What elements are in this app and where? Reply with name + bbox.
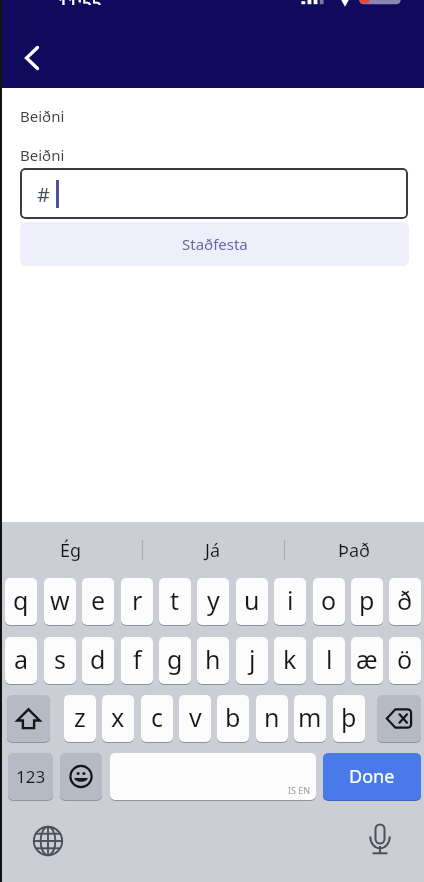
staticText: n	[264, 700, 280, 734]
staticText: f	[133, 642, 142, 676]
staticText: Beiðni	[20, 145, 65, 165]
button[interactable]: v	[179, 695, 211, 742]
staticText: r	[132, 583, 143, 617]
button[interactable]: Backspace	[377, 695, 421, 742]
button[interactable]: h	[197, 637, 229, 684]
staticText: 123	[16, 765, 46, 788]
button[interactable]: k	[274, 637, 306, 684]
button[interactable]: ð	[389, 578, 421, 625]
button[interactable]: q	[5, 578, 37, 625]
button[interactable]: g	[159, 637, 191, 684]
staticText: k	[283, 642, 297, 676]
staticText: Beiðni	[20, 106, 65, 126]
button[interactable]: s	[44, 637, 76, 684]
button[interactable]: t	[159, 578, 191, 625]
button[interactable]: Já	[142, 522, 283, 578]
button[interactable]: j	[236, 637, 268, 684]
button[interactable]: i	[274, 578, 306, 625]
button[interactable]: d	[82, 637, 114, 684]
staticText: x	[111, 700, 125, 734]
staticText: þ	[341, 700, 357, 734]
staticText: c	[151, 700, 164, 734]
button[interactable]: Done	[323, 753, 421, 800]
staticText: #	[37, 181, 50, 208]
staticText: l	[326, 642, 333, 676]
button[interactable]: 123	[8, 753, 53, 800]
button[interactable]: #	[20, 168, 408, 219]
button[interactable]: u	[236, 578, 268, 625]
staticText: w	[50, 583, 70, 617]
staticText: y	[207, 583, 220, 617]
staticText: u	[244, 583, 260, 617]
button[interactable]: e	[82, 578, 114, 625]
button[interactable]: Voice input	[360, 820, 400, 860]
staticText: t	[170, 583, 180, 617]
staticText: æ	[356, 642, 378, 676]
staticText: d	[90, 642, 106, 676]
staticText: s	[54, 642, 66, 676]
button[interactable]: Það	[283, 522, 424, 578]
button[interactable]: z	[64, 695, 96, 742]
button[interactable]: Ég	[0, 522, 142, 578]
button[interactable]: m	[294, 695, 326, 742]
staticText: v	[189, 700, 202, 734]
button[interactable]: x	[102, 695, 134, 742]
button[interactable]: þ	[333, 695, 365, 742]
staticText: a	[14, 642, 29, 676]
staticText: q	[13, 583, 29, 617]
staticText: i	[287, 583, 294, 617]
staticText: 11:55	[58, 0, 102, 5]
button[interactable]: ö	[389, 637, 421, 684]
button[interactable]: Shift	[7, 695, 50, 742]
staticText: ö	[397, 642, 413, 676]
button[interactable]: y	[197, 578, 229, 625]
staticText: h	[205, 642, 221, 676]
staticText: ð	[397, 583, 413, 617]
button[interactable]: IS EN	[110, 753, 316, 800]
button[interactable]: æ	[351, 637, 383, 684]
button[interactable]: Emoji	[60, 753, 102, 800]
button[interactable]: Back	[11, 37, 53, 79]
staticText: j	[249, 642, 256, 676]
staticText: Já	[205, 538, 221, 563]
staticText: Staðfesta	[182, 234, 248, 254]
button[interactable]: Change keyboard	[28, 821, 68, 861]
button[interactable]: f	[121, 637, 153, 684]
button[interactable]: Staðfesta	[20, 222, 409, 266]
staticText: Það	[338, 538, 370, 563]
staticText: b	[225, 700, 241, 734]
staticText: e	[91, 583, 106, 617]
staticText: g	[167, 642, 183, 676]
staticText: Done	[349, 764, 395, 789]
staticText: p	[359, 583, 375, 617]
staticText: m	[298, 700, 322, 734]
button[interactable]: n	[256, 695, 288, 742]
button[interactable]: p	[351, 578, 383, 625]
button[interactable]: l	[313, 637, 345, 684]
button[interactable]: w	[44, 578, 76, 625]
button[interactable]: r	[121, 578, 153, 625]
staticText: Ég	[60, 538, 82, 563]
button[interactable]: c	[141, 695, 173, 742]
button[interactable]: b	[217, 695, 249, 742]
button[interactable]: a	[5, 637, 37, 684]
staticText: o	[321, 583, 337, 617]
staticText: IS EN	[288, 784, 311, 796]
button[interactable]: o	[313, 578, 345, 625]
staticText: z	[74, 700, 86, 734]
